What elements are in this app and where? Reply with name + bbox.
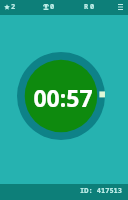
staticText: 0: [90, 2, 95, 12]
button[interactable]: 2: [2, 0, 18, 15]
staticText: 2: [11, 2, 16, 12]
button[interactable]: 0: [41, 0, 57, 15]
staticText: R: [84, 2, 89, 12]
button[interactable]: R: [82, 0, 97, 15]
staticText: 00:57: [33, 82, 93, 113]
staticText: 0: [50, 2, 55, 12]
button[interactable]: Timer 00:57: [17, 52, 105, 140]
button[interactable]: Open menu: [113, 0, 128, 15]
button[interactable]: ID: 417513: [80, 186, 128, 198]
